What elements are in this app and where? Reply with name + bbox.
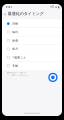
staticText: 最適化のタイミング xyxy=(8,11,44,16)
staticText: 自動 xyxy=(12,22,18,25)
staticText: 毎週 xyxy=(12,39,18,42)
button[interactable]: 手動 xyxy=(2,62,62,70)
button[interactable]: Record xyxy=(48,73,57,82)
button[interactable]: Back xyxy=(2,11,7,17)
button[interactable]: 2週間ごと xyxy=(2,53,62,62)
staticText: 9:41 xyxy=(6,5,13,9)
button[interactable]: 自動 xyxy=(2,20,62,28)
staticText: ‹ xyxy=(4,10,6,17)
staticText: 2週間ごと xyxy=(12,56,26,59)
staticText: 最適化を実行するタイミングを選択します。 xyxy=(7,72,27,74)
staticText: 毎月 xyxy=(12,47,18,51)
button[interactable]: 毎月 xyxy=(2,45,62,53)
button[interactable]: 毎日 xyxy=(2,28,62,36)
staticText: 手動 xyxy=(12,64,18,67)
button[interactable]: 毎週 xyxy=(2,36,62,45)
staticText: バッテリー残量が少ないときは実行されません。 xyxy=(7,74,29,76)
staticText: 毎日 xyxy=(12,30,18,34)
staticText: •ıll ≡ ▮ xyxy=(50,5,59,9)
